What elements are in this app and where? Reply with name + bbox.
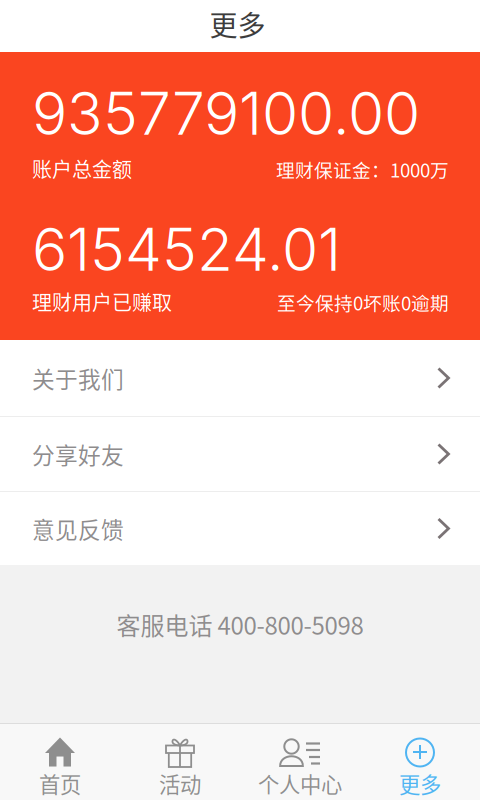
staticText: 6154524.01: [32, 214, 341, 285]
button[interactable]: 关于我们: [0, 340, 480, 416]
staticText: 理财用户已赚取: [32, 287, 172, 316]
button[interactable]: 活动: [120, 723, 240, 800]
button[interactable]: 意见反馈: [0, 492, 480, 565]
staticText: 更多: [399, 768, 441, 799]
staticText: 账户总金额: [32, 154, 132, 183]
staticText: 至今保持0坏账0逾期: [277, 289, 449, 316]
staticText: 个人中心: [258, 768, 342, 799]
staticText: 意见反馈: [32, 512, 124, 545]
button[interactable]: 分享好友: [0, 417, 480, 491]
staticText: 关于我们: [32, 362, 124, 394]
staticText: 理财保证金：1000万: [276, 156, 449, 183]
button[interactable]: 客服电话 400-800-5098: [92, 597, 387, 652]
staticText: 分享好友: [32, 438, 124, 470]
staticText: 活动: [159, 768, 201, 799]
button[interactable]: 个人中心: [240, 723, 360, 800]
staticText: 更多: [209, 4, 265, 44]
staticText: 935779100.00: [32, 78, 420, 149]
button[interactable]: 更多: [360, 723, 480, 800]
button[interactable]: 首页: [0, 723, 120, 800]
staticText: 客服电话 400-800-5098: [116, 607, 363, 642]
staticText: 首页: [39, 768, 81, 799]
